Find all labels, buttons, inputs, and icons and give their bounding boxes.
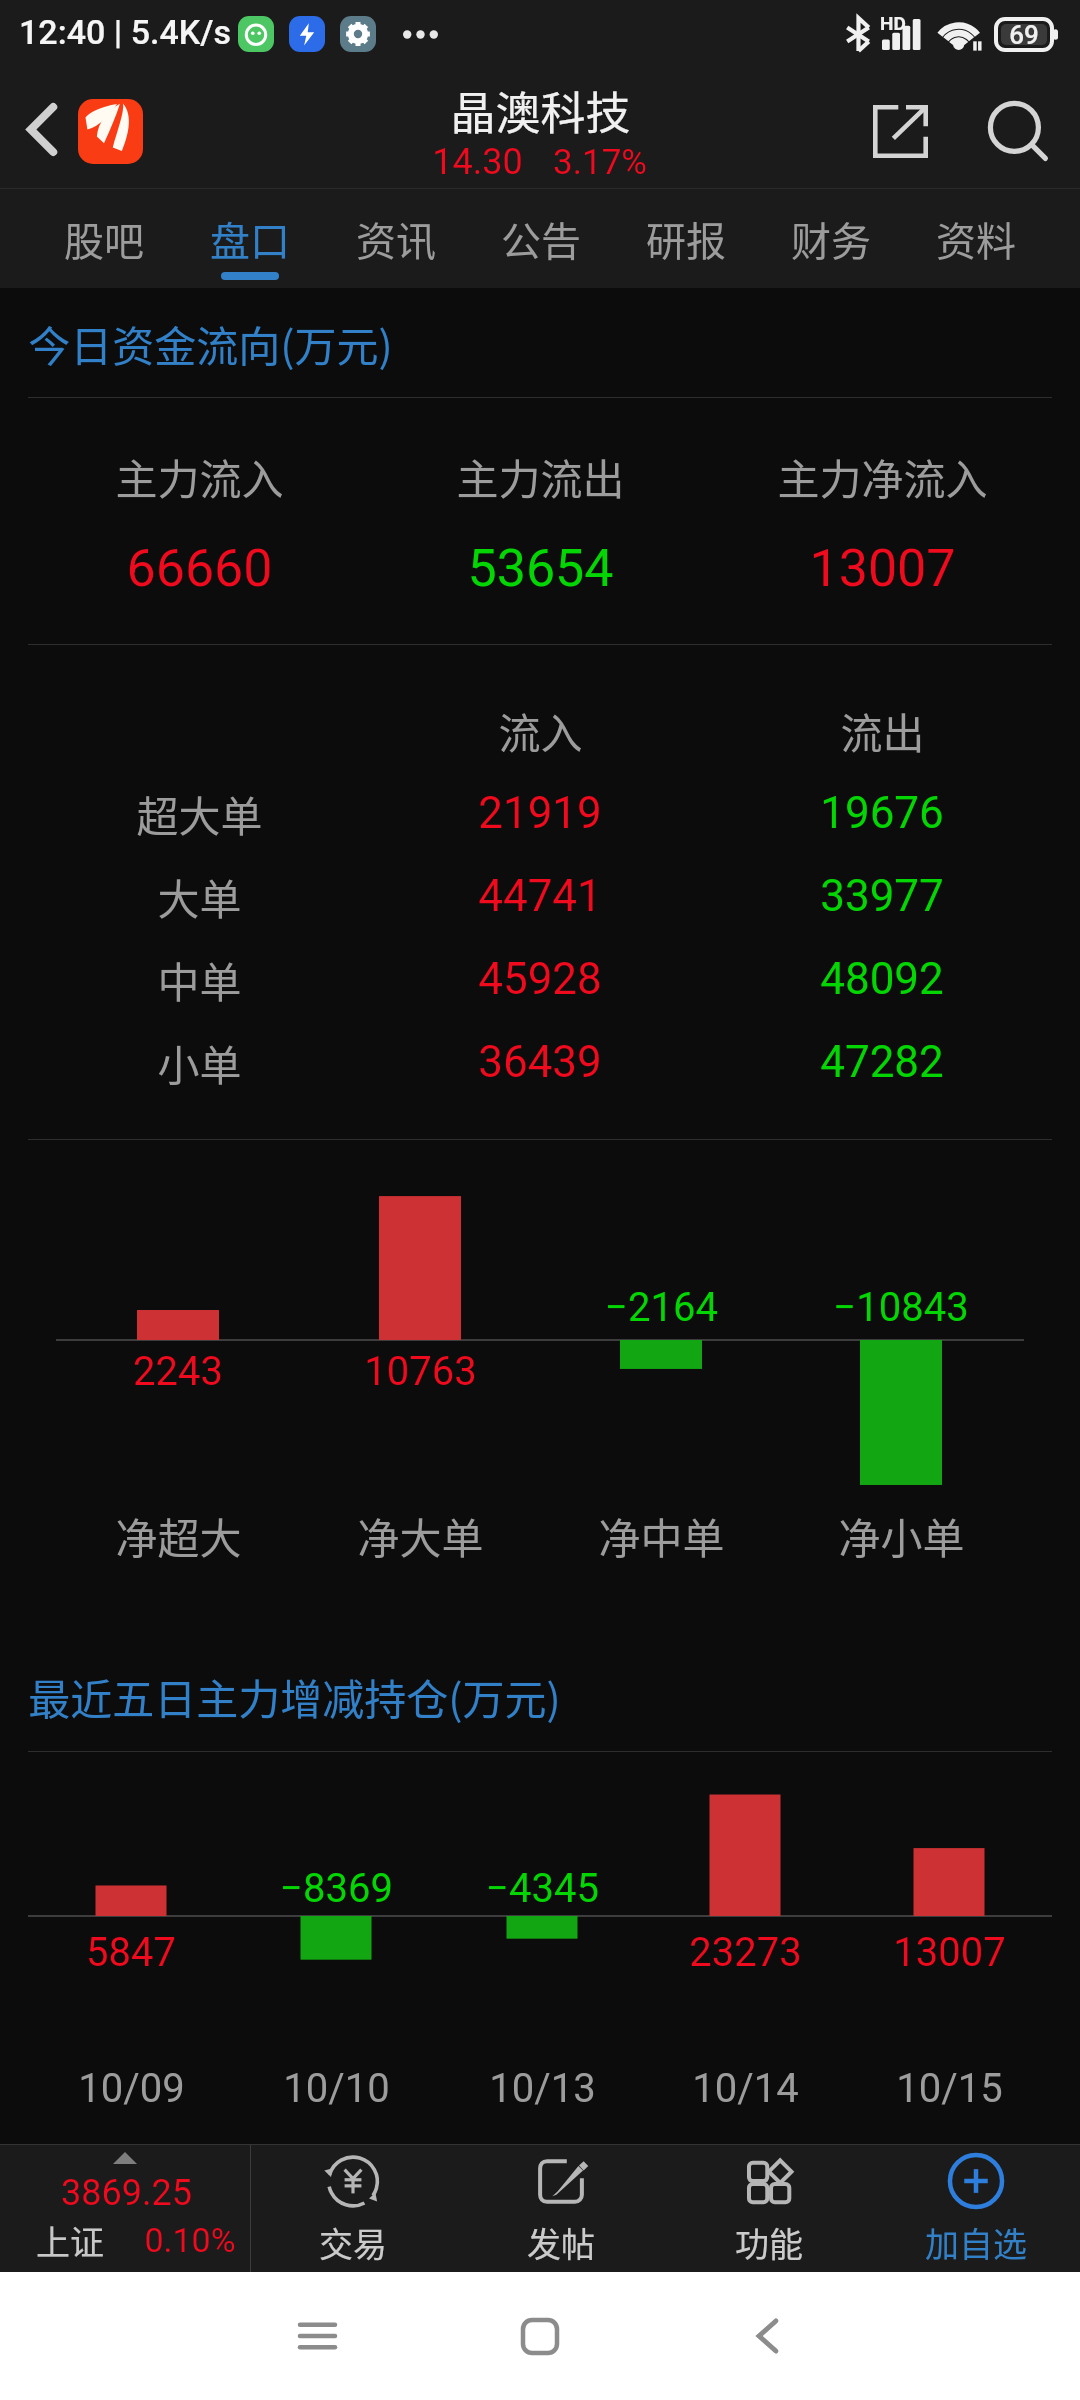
staticText: 69 <box>1009 20 1039 50</box>
button[interactable] <box>249 2145 457 2272</box>
staticText: 大单 <box>157 866 242 927</box>
staticText: 14.30 <box>432 141 523 183</box>
staticText: 资料 <box>936 210 1016 268</box>
staticText: 10/15 <box>896 2065 1003 2112</box>
staticText: 盘口 <box>210 210 290 268</box>
staticText: 44741 <box>478 870 602 922</box>
button[interactable]: Back <box>707 2272 827 2400</box>
staticText: 48092 <box>820 953 944 1005</box>
button[interactable]: Recents <box>257 2272 377 2400</box>
staticText: 今日资金流向(万元) <box>28 313 393 374</box>
staticText: 财务 <box>791 210 871 268</box>
button[interactable]: Home <box>480 2272 600 2400</box>
staticText: 3.17% <box>553 142 647 183</box>
staticText: 2243 <box>133 1348 223 1395</box>
staticText: 公告 <box>501 210 581 268</box>
staticText: 10/14 <box>692 2065 799 2112</box>
staticText: HD <box>880 12 906 34</box>
button[interactable] <box>614 189 758 288</box>
button[interactable]: Share <box>847 78 955 189</box>
button[interactable] <box>178 189 322 288</box>
staticText: 33977 <box>820 870 944 922</box>
staticText: 主力净流入 <box>777 446 988 507</box>
staticText: 36439 <box>478 1036 602 1088</box>
staticText: 资讯 <box>356 210 436 268</box>
staticText: 21919 <box>478 787 602 839</box>
staticText: 主力流出 <box>456 446 625 507</box>
staticText: 23273 <box>689 1929 802 1976</box>
staticText: 5847 <box>86 1929 176 1976</box>
button[interactable]: Eastmoney home <box>78 99 143 164</box>
button[interactable] <box>904 189 1048 288</box>
button[interactable]: Shanghai index <box>0 2145 250 2272</box>
staticText: 净大单 <box>357 1505 484 1566</box>
staticText: 10763 <box>364 1348 477 1395</box>
staticText: 10/09 <box>78 2065 185 2112</box>
staticText: 晶澳科技 <box>450 78 631 143</box>
staticText: 最近五日主力增减持仓(万元) <box>28 1666 561 1727</box>
staticText: 发帖 <box>527 2218 595 2267</box>
staticText: 流出 <box>840 700 925 761</box>
button[interactable] <box>665 2145 873 2272</box>
staticText: 流入 <box>498 700 583 761</box>
button[interactable] <box>457 2145 665 2272</box>
staticText: 功能 <box>735 2218 803 2267</box>
staticText: 净超大 <box>115 1505 242 1566</box>
staticText: 研报 <box>646 210 726 268</box>
staticText: 19676 <box>820 787 944 839</box>
staticText: 交易 <box>319 2218 387 2267</box>
staticText: 加自选 <box>925 2218 1027 2267</box>
staticText: 净中单 <box>598 1505 725 1566</box>
staticText: 66660 <box>126 538 273 599</box>
staticText: 10/13 <box>489 2065 596 2112</box>
button[interactable]: Search <box>955 78 1068 189</box>
staticText: −4345 <box>486 1865 599 1912</box>
staticText: 净小单 <box>838 1505 965 1566</box>
staticText: 12:40 | 5.4K/s <box>19 12 231 52</box>
button[interactable] <box>872 2145 1080 2272</box>
staticText: −10843 <box>833 1284 969 1331</box>
staticText: 中单 <box>157 949 242 1010</box>
staticText: 上证 <box>36 2216 104 2265</box>
staticText: 13007 <box>893 1929 1006 1976</box>
staticText: 股吧 <box>64 210 144 268</box>
button[interactable] <box>324 189 468 288</box>
staticText: 3869.25 <box>61 2172 192 2214</box>
staticText: −8369 <box>280 1865 393 1912</box>
staticText: 超大单 <box>136 783 263 844</box>
button[interactable]: Back <box>0 78 78 189</box>
staticText: 47282 <box>820 1036 944 1088</box>
button[interactable] <box>759 189 903 288</box>
staticText: 10/10 <box>283 2065 390 2112</box>
staticText: 0.10% <box>144 2220 236 2260</box>
staticText: −2164 <box>605 1284 718 1331</box>
staticText: 45928 <box>478 953 602 1005</box>
button[interactable] <box>469 189 613 288</box>
staticText: 主力流入 <box>115 446 284 507</box>
staticText: 小单 <box>157 1032 242 1093</box>
staticText: 13007 <box>809 538 956 599</box>
staticText: 53654 <box>467 538 614 599</box>
button[interactable] <box>32 189 176 288</box>
